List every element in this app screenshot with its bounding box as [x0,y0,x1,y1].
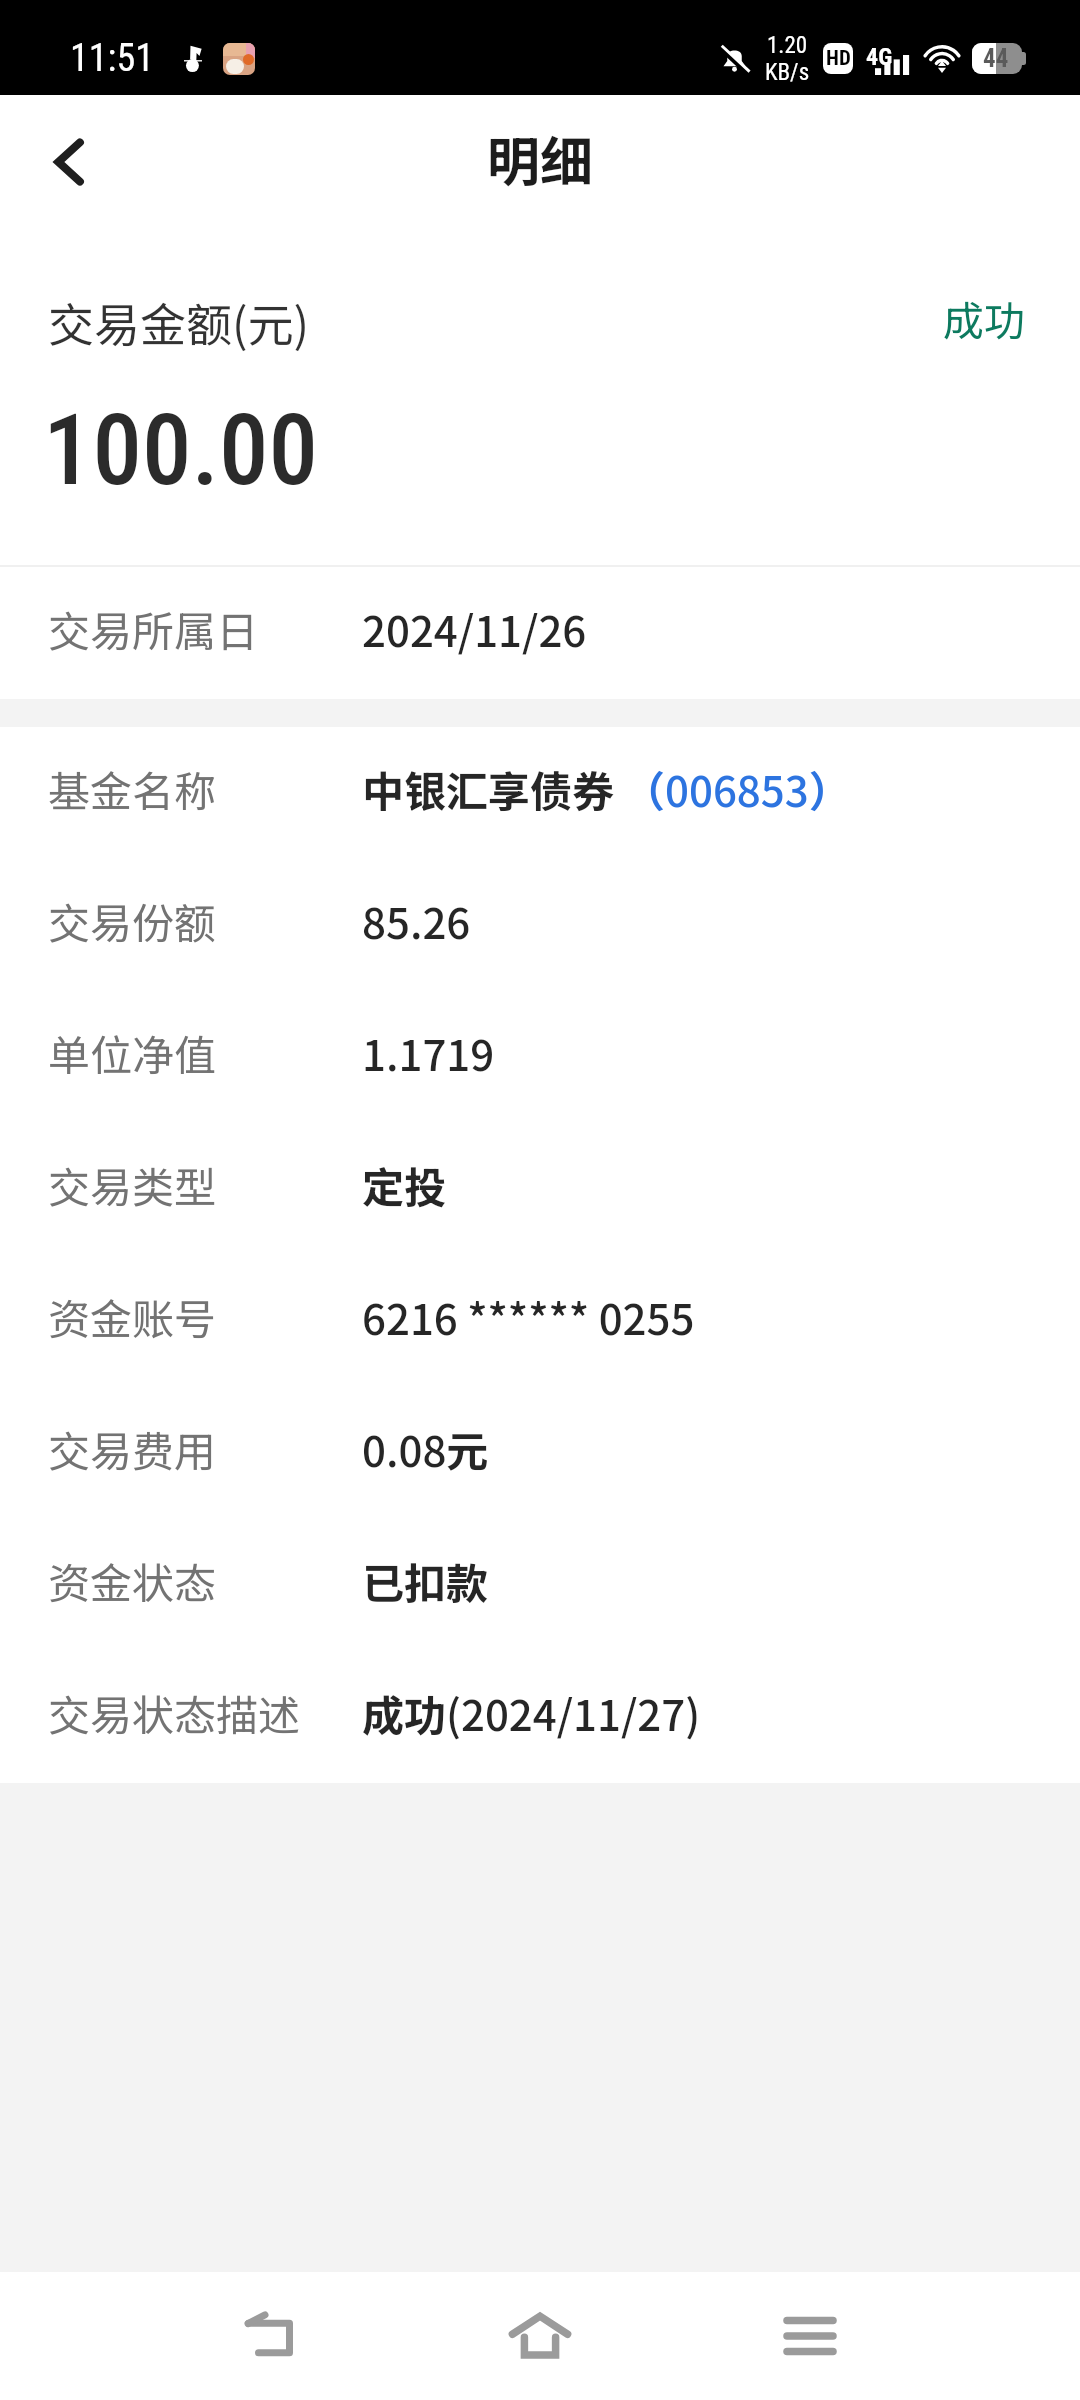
staticText: 交易所属日 [48,598,259,659]
staticText: 44 [983,44,1009,73]
button[interactable]: 资金账号 [0,1255,1080,1387]
button[interactable]: 交易类型 [0,1123,1080,1255]
button[interactable]: 资金状态 [0,1519,1080,1651]
button[interactable]: Back [0,95,120,247]
staticText: 成功 [943,288,1025,347]
button[interactable]: 单位净值 [0,991,1080,1123]
staticText: 100.00 [43,392,319,508]
button[interactable]: 交易所属日 [0,567,1080,699]
staticText: 明细 [487,120,593,197]
staticText: （006853） [623,758,851,819]
staticText: 交易类型 [48,1154,217,1215]
staticText: 单位净值 [48,1022,217,1083]
button[interactable]: （006853） [623,763,851,824]
button[interactable]: 交易费用 [0,1387,1080,1519]
staticText: 4G [866,43,893,71]
staticText: 资金账号 [48,1286,217,1347]
button[interactable]: 交易份额 [0,859,1080,991]
staticText: 交易状态描述 [48,1682,301,1743]
staticText: 已扣款 [362,1550,489,1611]
staticText: 1.20 [767,32,808,59]
staticText: 基金名称 [48,758,217,819]
staticText: KB/s [765,59,810,86]
staticText: 1.1719 [362,1022,495,1083]
staticText: 交易费用 [48,1418,217,1479]
staticText: 11:51 [70,36,154,81]
staticText: 成功(2024/11/27) [362,1682,701,1743]
staticText: 85.26 [362,890,471,951]
staticText: HD [826,46,851,71]
button[interactable]: 交易状态描述 [0,1651,1080,1783]
button[interactable]: Menu [675,2272,945,2400]
staticText: 交易金额(元) [48,289,310,356]
staticText: 交易份额 [48,890,217,951]
button[interactable]: Home [405,2272,675,2400]
button[interactable]: 基金名称 [0,727,1080,859]
staticText: 资金状态 [48,1550,217,1611]
staticText: 6216 ****** 0255 [362,1286,695,1347]
staticText: 定投 [362,1154,447,1215]
staticText: 0.08元 [362,1418,489,1479]
staticText: 中银汇享债券 [362,758,615,819]
button[interactable]: Back [135,2272,405,2400]
staticText: 2024/11/26 [362,598,587,659]
